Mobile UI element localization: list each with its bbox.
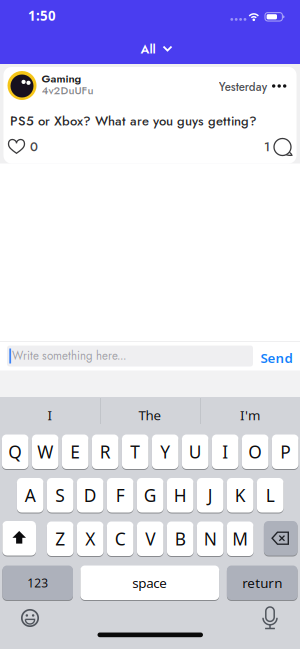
staticText: space xyxy=(132,574,167,592)
staticText: PS5 or Xbox? What are you guys getting? xyxy=(10,112,257,130)
staticText: K xyxy=(235,484,246,507)
staticText: Z xyxy=(55,527,65,550)
staticText: I xyxy=(222,440,228,463)
staticText: T xyxy=(130,440,140,463)
staticText: P xyxy=(280,440,290,463)
button[interactable]: P xyxy=(272,434,298,469)
staticText: A xyxy=(25,484,36,507)
staticText: U xyxy=(189,440,202,463)
staticText: X xyxy=(85,527,95,550)
staticText: All xyxy=(140,40,155,58)
button[interactable]: Send xyxy=(247,349,292,367)
staticText: 1 xyxy=(264,138,270,156)
staticText: The xyxy=(138,406,161,424)
button[interactable]: D xyxy=(77,477,103,513)
button[interactable] xyxy=(264,521,297,556)
button[interactable]: All xyxy=(140,40,172,58)
staticText: 0 xyxy=(30,138,38,156)
button[interactable]: F xyxy=(107,477,133,513)
button[interactable]: K xyxy=(227,477,253,513)
button[interactable]: M xyxy=(227,521,253,556)
staticText: F xyxy=(116,484,125,507)
staticText: Q xyxy=(8,440,22,463)
staticText: B xyxy=(175,527,186,550)
button[interactable]: Write something here... xyxy=(7,345,253,366)
staticText: 123 xyxy=(27,575,48,591)
staticText: return xyxy=(242,574,282,592)
staticText: Gaming xyxy=(41,71,81,87)
button[interactable]: N xyxy=(197,521,223,556)
staticText: I'm xyxy=(240,406,260,424)
staticText: R xyxy=(100,440,111,463)
button[interactable]: J xyxy=(197,477,223,513)
staticText: E xyxy=(70,440,80,463)
staticText: J xyxy=(208,484,213,507)
staticText: L xyxy=(266,484,275,507)
button[interactable]: 123 xyxy=(2,565,73,600)
staticText: C xyxy=(115,527,126,550)
button[interactable]: I xyxy=(0,400,100,430)
staticText: Write something here... xyxy=(12,347,126,364)
button[interactable]: L xyxy=(257,477,283,513)
button[interactable]: Gaming xyxy=(3,67,296,163)
staticText: V xyxy=(145,527,155,550)
button[interactable]: 1 xyxy=(264,138,284,156)
button[interactable]: X xyxy=(77,521,103,556)
staticText: Yesterday xyxy=(219,79,267,95)
button[interactable]: U xyxy=(182,434,208,469)
button[interactable]: The xyxy=(100,400,200,430)
staticText: 1:50 xyxy=(28,7,56,24)
button[interactable]: S xyxy=(47,477,73,513)
button[interactable] xyxy=(262,607,277,629)
button[interactable]: space xyxy=(80,565,219,600)
staticText: 4v2DuUFu xyxy=(41,83,93,98)
button[interactable] xyxy=(21,609,39,627)
button[interactable]: G xyxy=(137,477,163,513)
staticText: Send xyxy=(260,349,292,367)
staticText: N xyxy=(204,527,217,550)
staticText: S xyxy=(55,484,65,507)
staticText: M xyxy=(232,527,248,550)
button[interactable]: O xyxy=(242,434,268,469)
button[interactable]: B xyxy=(167,521,193,556)
button[interactable]: Y xyxy=(152,434,178,469)
staticText: D xyxy=(84,484,97,507)
button[interactable] xyxy=(2,521,36,556)
button[interactable] xyxy=(272,83,286,89)
staticText: W xyxy=(37,440,53,463)
button[interactable]: I'm xyxy=(200,400,300,430)
staticText: I xyxy=(47,406,52,424)
button[interactable]: V xyxy=(137,521,163,556)
staticText: O xyxy=(248,440,262,463)
button[interactable]: Z xyxy=(47,521,73,556)
button[interactable]: W xyxy=(32,434,58,469)
button[interactable]: 0 xyxy=(8,138,24,156)
staticText: H xyxy=(174,484,187,507)
button[interactable]: C xyxy=(107,521,133,556)
staticText: G xyxy=(144,484,157,507)
button[interactable]: H xyxy=(167,477,193,513)
button[interactable]: I xyxy=(212,434,238,469)
button[interactable]: A xyxy=(17,477,43,513)
button[interactable]: E xyxy=(62,434,88,469)
button[interactable]: R xyxy=(92,434,118,469)
staticText: Y xyxy=(160,440,170,463)
button[interactable]: return xyxy=(227,565,297,600)
button[interactable]: T xyxy=(122,434,148,469)
button[interactable]: Q xyxy=(2,434,28,469)
